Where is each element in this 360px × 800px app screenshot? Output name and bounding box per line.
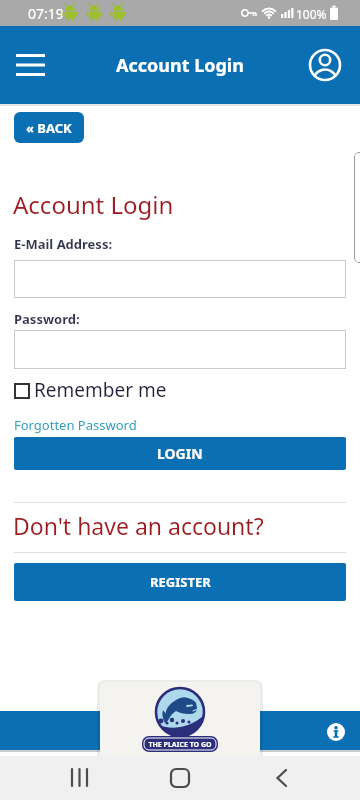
staticText: LOGIN: [157, 444, 203, 463]
staticText: REGISTER: [150, 573, 211, 591]
staticText: Don't have an account?: [13, 510, 264, 541]
button[interactable]: LOGIN: [14, 437, 346, 470]
button[interactable]: « BACK: [14, 112, 84, 143]
staticText: Remember me: [34, 377, 167, 403]
staticText: Account Login: [116, 53, 244, 78]
staticText: E-Mail Address:: [14, 235, 113, 253]
button[interactable]: [6, 41, 54, 89]
staticText: « BACK: [26, 119, 72, 137]
button[interactable]: [14, 383, 30, 399]
staticText: Account Login: [13, 188, 174, 221]
button[interactable]: Forgotten Password: [0, 0, 123, 18]
staticText: 07:19: [28, 4, 64, 23]
button[interactable]: [322, 718, 350, 746]
button[interactable]: REGISTER: [14, 563, 346, 601]
staticText: 100%: [296, 6, 327, 22]
button[interactable]: [301, 41, 349, 89]
staticText: THE PLAICE TO GO: [142, 740, 218, 750]
staticText: Password:: [14, 310, 80, 328]
